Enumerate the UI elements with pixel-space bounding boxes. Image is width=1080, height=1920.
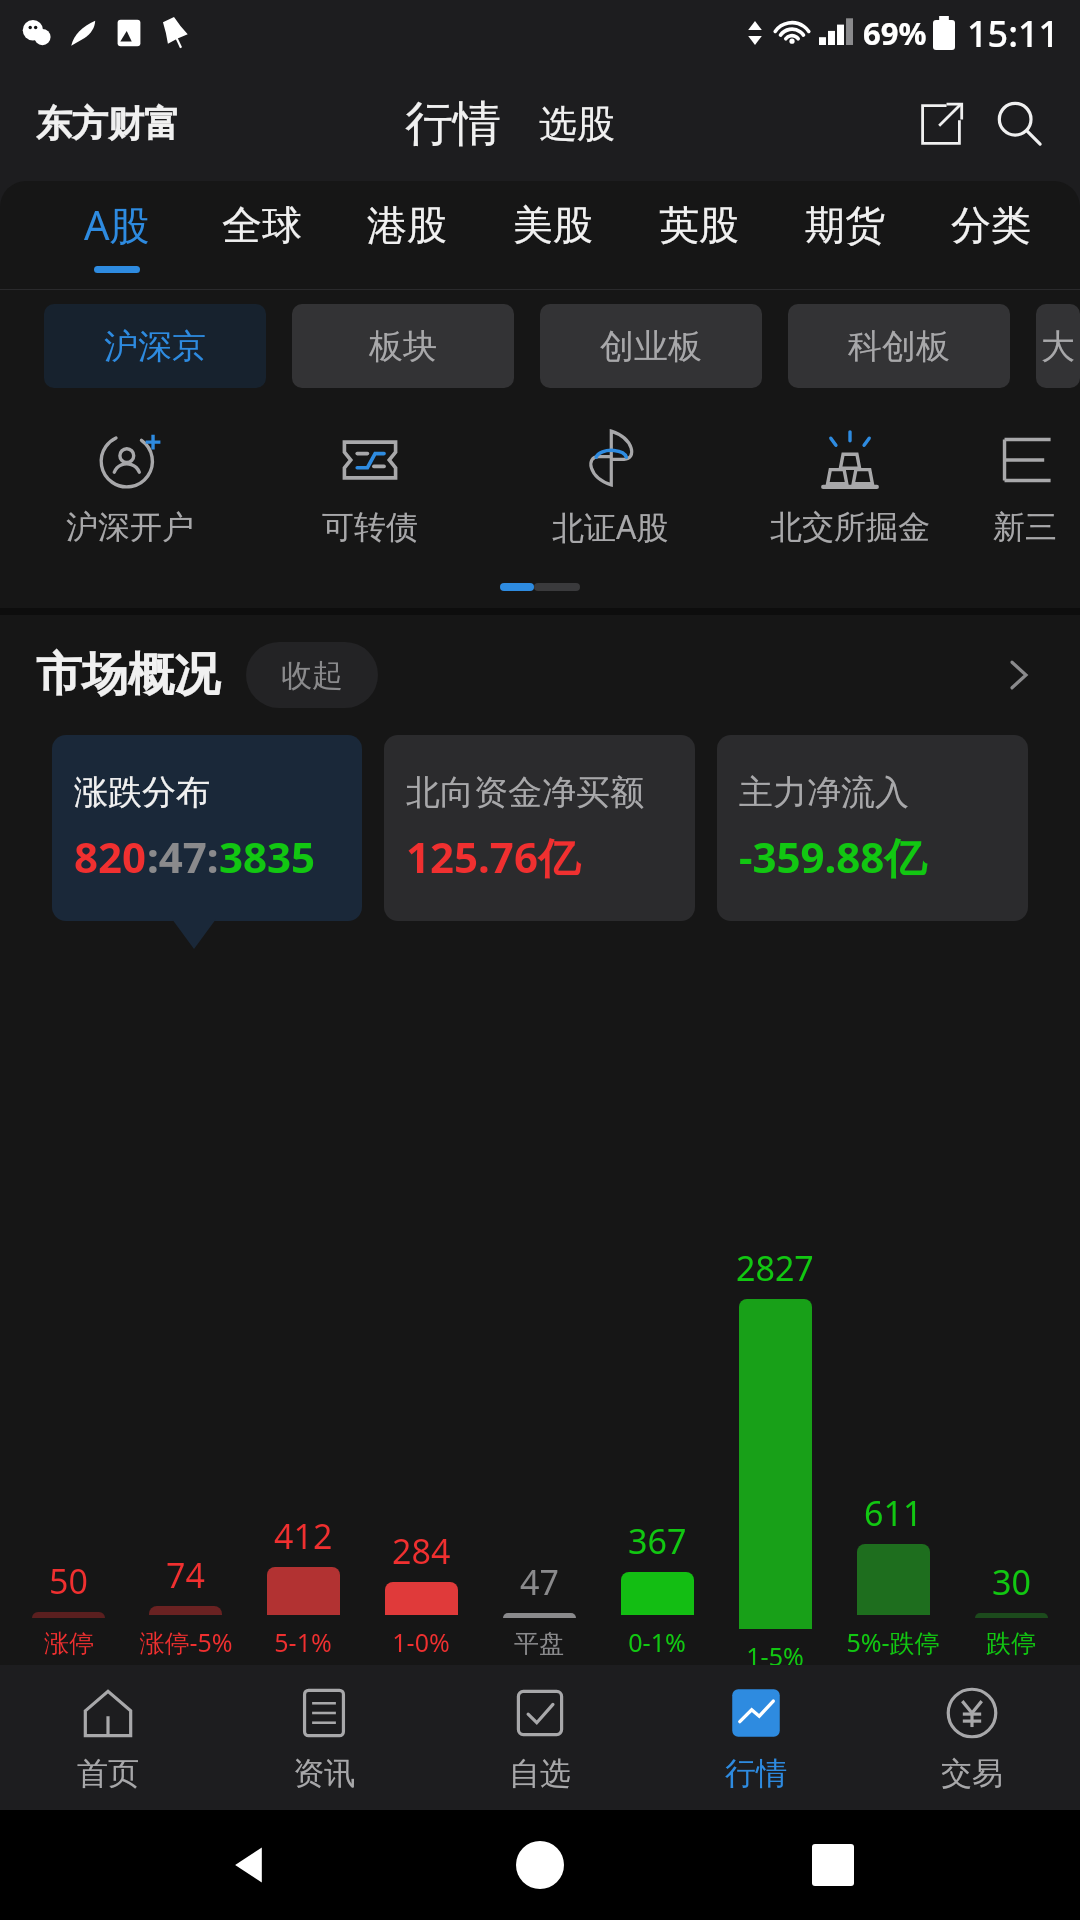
staticText: 跌停 [986,1628,1036,1659]
staticText: 创业板 [600,325,702,368]
staticText: 自选 [509,1754,571,1793]
staticText: 美股 [513,200,593,250]
staticText: 英股 [659,200,739,250]
staticText: 412 [274,1513,333,1559]
staticText: 2827 [736,1245,814,1291]
staticText: 行情 [725,1754,787,1793]
staticText: 5-1% [274,1625,332,1659]
staticText: 行情 [405,94,501,154]
button[interactable]: Share [910,93,972,155]
staticText: 主力净流入 [739,771,909,814]
staticText: 50 [49,1558,88,1604]
staticText: 涨跌分布 [74,771,210,814]
staticText: 367 [628,1518,687,1564]
staticText: 全球 [222,200,302,250]
staticText: 3835 [219,828,316,885]
staticText: 沪深京 [104,325,206,368]
button[interactable]: 市场概况 [36,615,1044,735]
staticText: 北交所掘金 [770,507,930,547]
staticText: 74 [166,1552,205,1598]
staticText: 820 [74,828,147,885]
staticText: 47 [520,1559,559,1605]
button[interactable]: 英股 [626,181,772,289]
staticText: 可转债 [322,507,418,547]
button[interactable]: 首页 [0,1665,216,1810]
button[interactable]: 美股 [480,181,626,289]
staticText: 市场概况 [36,646,220,704]
button[interactable]: Search [988,93,1050,155]
button[interactable]: 行情 [399,94,507,154]
staticText: 期货 [805,200,885,250]
staticText: 港股 [367,200,447,250]
button[interactable]: 新三 [970,402,1080,572]
staticText: 1-5% [746,1639,804,1665]
button[interactable]: 沪深京 [44,304,266,388]
button[interactable]: 全球 [189,181,334,289]
button[interactable]: 资讯 [216,1665,432,1810]
button[interactable]: 大 [1036,304,1080,388]
button[interactable]: 创业板 [540,304,762,388]
staticText: 北证A股 [552,505,669,549]
staticText: 新三 [993,507,1057,547]
button[interactable]: 北证A股 [490,402,730,572]
button[interactable]: 涨跌分布 [52,735,362,921]
staticText: 125.76亿 [406,828,580,885]
button[interactable]: 板块 [292,304,514,388]
staticText: 分类 [951,200,1031,250]
button[interactable]: 东方财富 [36,101,180,146]
staticText: 科创板 [848,325,950,368]
button[interactable]: 北向资金净买额 [384,735,695,921]
staticText: 沪深开户 [66,507,194,547]
staticText: 涨停-5% [139,1625,233,1659]
staticText: 611 [864,1490,923,1536]
staticText: -359.88亿 [739,828,927,885]
button[interactable]: 收起 [246,642,378,708]
staticText: 5%-跌停 [846,1625,940,1659]
staticText: 选股 [539,100,615,148]
staticText: 15:11 [967,9,1060,58]
staticText: 大 [1041,325,1075,368]
button[interactable]: Back [203,1820,293,1910]
staticText: 30 [992,1559,1031,1605]
staticText: :47: [147,828,219,885]
button[interactable]: Home [495,1820,585,1910]
button[interactable]: More [992,649,1044,701]
button[interactable]: 可转债 [250,402,490,572]
button[interactable]: 主力净流入 [717,735,1028,921]
button[interactable]: A股 [44,181,189,289]
button[interactable]: 期货 [772,181,918,289]
staticText: 69% [863,12,927,54]
staticText: 284 [392,1528,451,1574]
staticText: 平盘 [514,1628,564,1659]
button[interactable]: 北交所掘金 [730,402,970,572]
button[interactable]: Recents [788,1820,878,1910]
button[interactable]: 选股 [533,94,621,154]
staticText: 首页 [77,1754,139,1793]
button[interactable]: 行情 [648,1665,864,1810]
staticText: 0-1% [628,1625,686,1659]
staticText: A股 [84,197,150,252]
staticText: 收起 [281,656,343,695]
button[interactable]: 分类 [918,181,1064,289]
staticText: 交易 [941,1754,1003,1793]
staticText: 涨停 [44,1628,94,1659]
staticText: 资讯 [293,1754,355,1793]
button[interactable]: 交易 [864,1665,1080,1810]
button[interactable]: 自选 [432,1665,648,1810]
button[interactable]: 科创板 [788,304,1010,388]
button[interactable]: 港股 [334,181,480,289]
staticText: 1-0% [392,1625,450,1659]
staticText: 北向资金净买额 [406,771,644,814]
staticText: 板块 [369,325,437,368]
button[interactable]: 沪深开户 [10,402,250,572]
